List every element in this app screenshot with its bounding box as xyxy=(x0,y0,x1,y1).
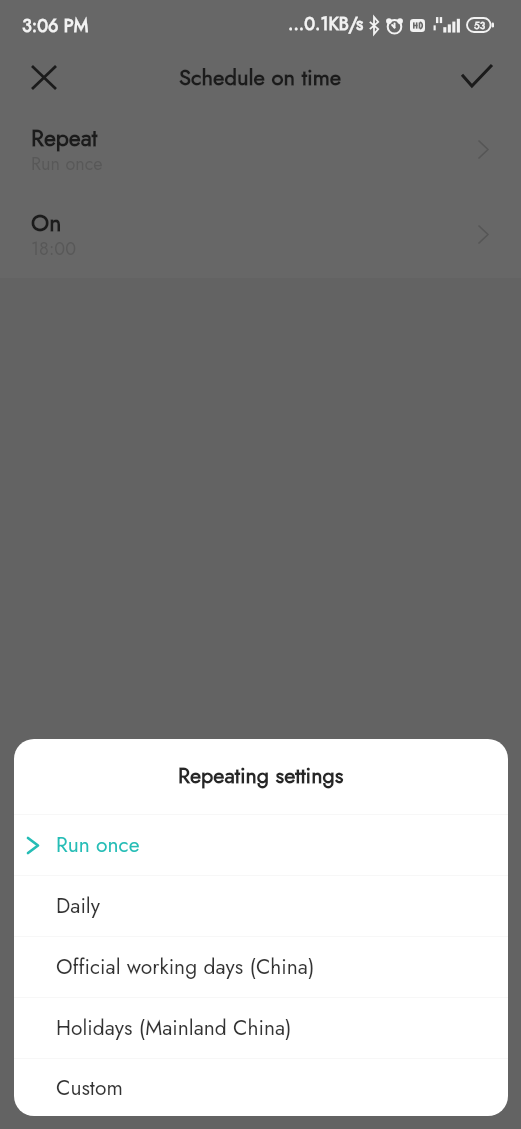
staticText: 53 xyxy=(474,18,486,32)
button[interactable]: Confirm xyxy=(462,65,492,86)
button[interactable]: On xyxy=(0,186,521,271)
staticText: 18:00 xyxy=(31,236,76,262)
staticText: Daily xyxy=(56,891,100,921)
staticText: ...0.1KB/s xyxy=(288,11,364,37)
staticText: Schedule on time xyxy=(179,61,342,93)
button[interactable]: Repeat xyxy=(0,101,521,186)
staticText: Repeating settings xyxy=(178,760,344,791)
button[interactable]: Close xyxy=(33,67,55,88)
button[interactable]: Holidays (Mainland China) xyxy=(14,998,508,1058)
staticText: 3:06 PM xyxy=(22,13,89,39)
staticText: Run once xyxy=(56,830,140,860)
button[interactable]: Custom xyxy=(14,1059,508,1116)
staticText: Repeat xyxy=(31,121,98,154)
staticText: Holidays (Mainland China) xyxy=(56,1013,292,1043)
staticText: Run once xyxy=(31,151,103,177)
button[interactable]: Daily xyxy=(14,876,508,936)
staticText: On xyxy=(31,206,62,239)
staticText: Custom xyxy=(56,1073,123,1103)
button[interactable]: Official working days (China) xyxy=(14,937,508,997)
button[interactable]: Run once xyxy=(14,815,508,875)
staticText: Official working days (China) xyxy=(56,952,315,982)
